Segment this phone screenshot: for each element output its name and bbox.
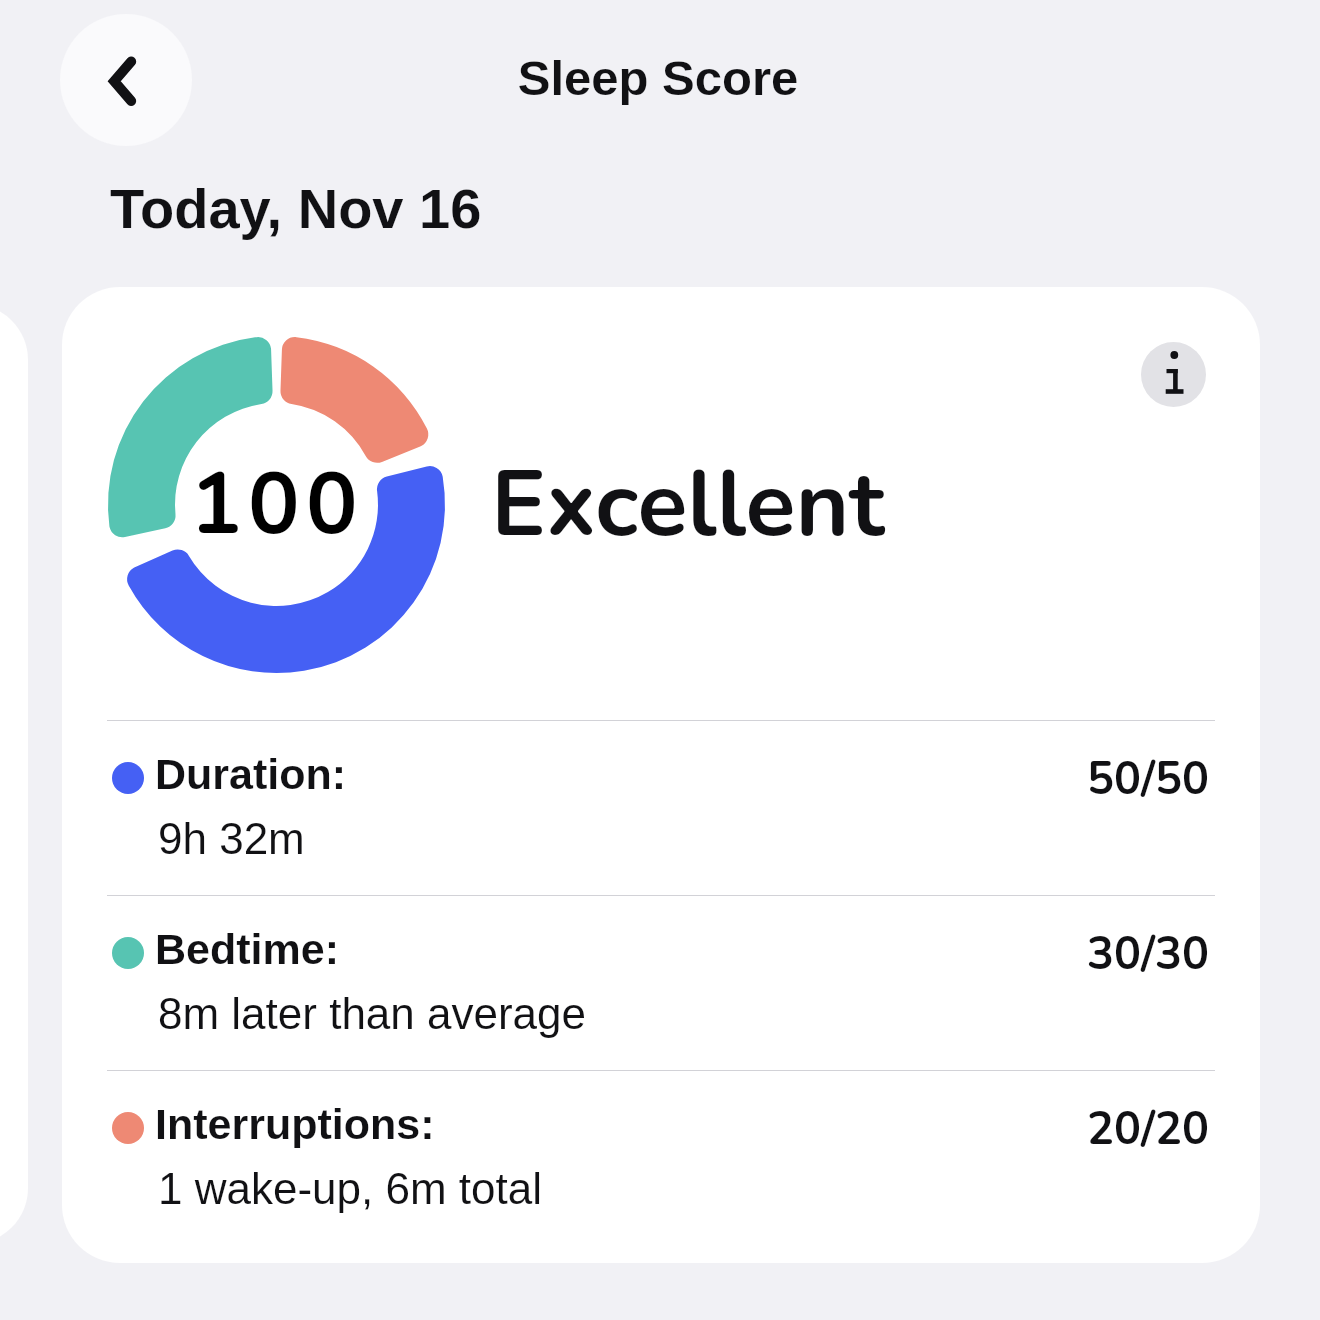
staticText: Today, Nov 16 xyxy=(110,177,482,240)
staticText: 100 xyxy=(181,446,373,563)
staticText: Excellent xyxy=(491,442,885,567)
button[interactable]: Bedtime: xyxy=(107,896,1215,1070)
staticText: Sleep Score xyxy=(0,51,1318,106)
staticText: Bedtime: xyxy=(155,925,339,973)
staticText: 8m later than average xyxy=(158,989,587,1038)
button[interactable]: Info xyxy=(1141,342,1206,407)
button[interactable]: Duration: xyxy=(107,721,1215,895)
staticText: 30/30 xyxy=(101,924,1209,985)
button[interactable]: Interruptions: xyxy=(107,1071,1215,1245)
staticText: Duration: xyxy=(155,750,347,798)
staticText: Interruptions: xyxy=(155,1100,435,1148)
staticText: 50/50 xyxy=(101,749,1209,810)
staticText: 9h 32m xyxy=(158,814,305,863)
staticText: 20/20 xyxy=(101,1099,1209,1160)
staticText: 1 wake-up, 6m total xyxy=(158,1164,542,1213)
button[interactable]: Back xyxy=(60,14,192,146)
